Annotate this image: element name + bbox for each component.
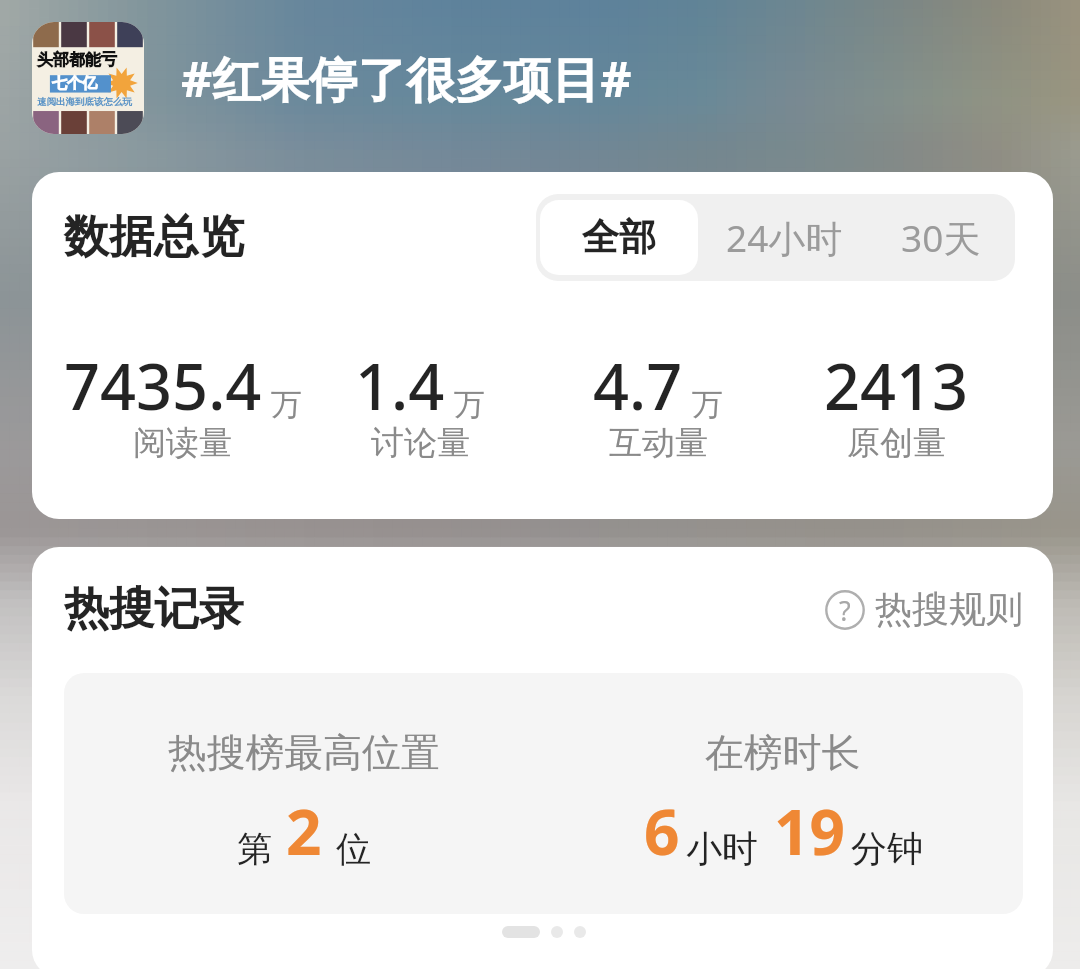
- staticText: 热搜规则: [875, 586, 1023, 633]
- staticText: 分钟: [851, 826, 923, 871]
- staticText: 2413: [824, 343, 969, 429]
- staticText: 热搜榜最高位置: [168, 729, 440, 778]
- staticText: 万: [454, 385, 485, 424]
- button[interactable]: 1.4: [301, 343, 539, 471]
- staticText: 头部都能亏: [37, 50, 117, 70]
- staticText: 19: [774, 789, 845, 873]
- staticText: 数据总览: [64, 209, 244, 266]
- staticText: 6: [644, 789, 680, 873]
- staticText: ?: [839, 592, 851, 629]
- staticText: 第: [237, 827, 272, 871]
- button[interactable]: 7435.4: [64, 343, 301, 471]
- button[interactable]: 全部: [540, 200, 698, 275]
- button[interactable]: 2413: [777, 343, 1015, 471]
- staticText: 万: [271, 385, 301, 424]
- staticText: 位: [336, 827, 371, 871]
- staticText: 万: [692, 385, 723, 424]
- staticText: 速阅出海到底该怎么玩: [37, 96, 132, 108]
- staticText: 7435.4: [64, 343, 262, 429]
- staticText: 30天: [901, 212, 981, 263]
- staticText: 全部: [582, 214, 656, 261]
- button[interactable]: 4.7: [539, 343, 777, 471]
- staticText: 在榜时长: [705, 729, 861, 778]
- staticText: 热搜记录: [64, 581, 244, 638]
- staticText: 小时: [686, 826, 758, 871]
- button[interactable]: 24小时: [698, 198, 871, 277]
- staticText: 4.7: [593, 343, 683, 429]
- staticText: 1.4: [355, 343, 445, 429]
- staticText: 讨论量: [371, 422, 470, 464]
- staticText: 原创量: [847, 422, 946, 464]
- staticText: 24小时: [726, 212, 843, 263]
- staticText: 阅读量: [133, 422, 232, 464]
- staticText: 互动量: [609, 422, 708, 464]
- staticText: 2: [286, 789, 322, 873]
- button[interactable]: 话题封面: [32, 22, 144, 134]
- staticText: 七个亿: [52, 74, 97, 93]
- staticText: #红果停了很多项目#: [181, 45, 632, 111]
- button[interactable]: 热搜规则: [825, 586, 1023, 633]
- button[interactable]: 30天: [871, 198, 1011, 277]
